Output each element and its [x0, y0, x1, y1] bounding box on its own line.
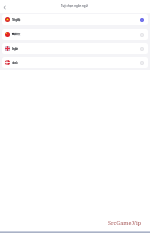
staticText: Tiếng Việt	[12, 18, 21, 21]
button[interactable]: English	[2, 43, 148, 54]
button[interactable]: Back	[0, 3, 8, 11]
staticText: 简体中文	[12, 33, 20, 36]
button[interactable]: 简体中文	[2, 29, 148, 40]
staticText: English	[12, 47, 18, 50]
button[interactable]: dansk	[2, 57, 148, 68]
button[interactable]: Tiếng Việt	[2, 14, 148, 25]
staticText: Tuỳ chọn ngôn ngữ	[61, 4, 88, 8]
staticText: SrcGame.Vip	[108, 219, 142, 226]
staticText: dansk	[12, 61, 18, 64]
